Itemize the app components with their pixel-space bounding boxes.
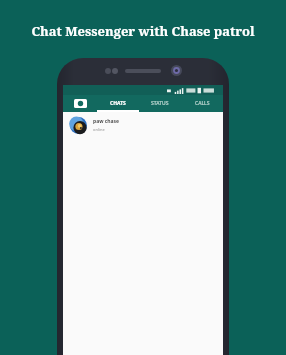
staticText: CHATS: [110, 100, 126, 107]
staticText: CALLS: [195, 100, 210, 107]
staticText: paw chase: [93, 118, 120, 125]
button[interactable]: CHATS: [97, 95, 139, 112]
button[interactable]: Camera: [63, 95, 97, 112]
button[interactable]: paw chase: [63, 112, 223, 138]
staticText: Chat Messenger with Chase patrol: [31, 22, 255, 40]
button[interactable]: STATUS: [139, 95, 181, 112]
staticText: online: [93, 127, 105, 132]
staticText: STATUS: [151, 100, 169, 107]
button[interactable]: CALLS: [181, 95, 223, 112]
